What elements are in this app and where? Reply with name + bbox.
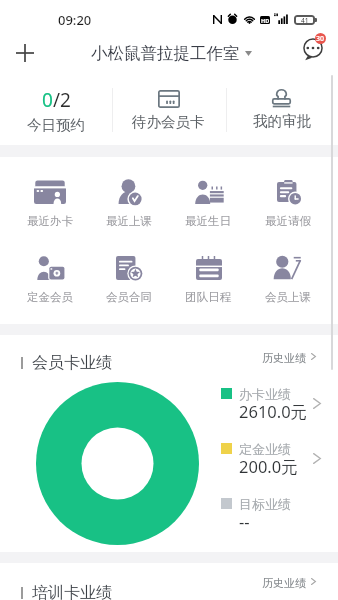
staticText: 小松鼠普拉提工作室 xyxy=(91,43,240,64)
staticText: 最近上课 xyxy=(106,214,152,228)
button[interactable]: 最近请假 xyxy=(248,157,328,233)
staticText: 培训卡业绩 xyxy=(32,583,112,600)
staticText: HD xyxy=(261,17,270,24)
button[interactable]: 我的审批 xyxy=(225,74,338,145)
staticText: 团队日程 xyxy=(185,290,231,304)
button[interactable]: Add xyxy=(9,37,40,68)
button[interactable]: 会员上课 xyxy=(248,233,328,324)
staticText: 会员合同 xyxy=(106,290,152,304)
staticText: 会员卡业绩 xyxy=(32,353,112,373)
button[interactable]: 历史业绩 xyxy=(262,341,330,375)
staticText: 最近办卡 xyxy=(27,214,73,228)
staticText: 最近生日 xyxy=(185,214,231,228)
staticText: 2610.0元 xyxy=(239,400,308,423)
button[interactable]: 历史业绩 xyxy=(262,571,330,595)
staticText: 09:20 xyxy=(58,11,92,29)
button[interactable]: 最近上课 xyxy=(89,157,168,233)
staticText: 历史业绩 xyxy=(262,576,306,590)
staticText: 最近请假 xyxy=(265,214,311,228)
button[interactable]: 定金会员 xyxy=(10,233,89,324)
button[interactable]: Messages xyxy=(297,32,331,66)
staticText: 0 xyxy=(42,87,53,113)
staticText: -- xyxy=(239,510,250,532)
staticText: 今日预约 xyxy=(27,116,85,134)
button[interactable]: 团队日程 xyxy=(168,233,248,324)
button[interactable]: 定金业绩 xyxy=(221,442,331,497)
staticText: 30 xyxy=(316,34,325,44)
button[interactable]: 待办会员卡 xyxy=(112,74,225,145)
button[interactable]: 最近办卡 xyxy=(10,157,89,233)
staticText: 待办会员卡 xyxy=(132,113,205,131)
button[interactable]: 会员合同 xyxy=(89,233,168,324)
staticText: 历史业绩 xyxy=(262,351,306,365)
staticText: 办卡业绩 xyxy=(239,386,291,402)
staticText: 41 xyxy=(301,16,309,25)
staticText: 我的审批 xyxy=(253,112,311,130)
staticText: /2 xyxy=(53,87,71,113)
staticText: 定金业绩 xyxy=(239,441,291,457)
button[interactable]: 0 xyxy=(0,74,112,145)
staticText: 会员上课 xyxy=(265,290,311,304)
staticText: 目标业绩 xyxy=(239,496,291,512)
button[interactable]: 办卡业绩 xyxy=(221,387,331,442)
staticText: 200.0元 xyxy=(239,455,298,478)
button[interactable]: 最近生日 xyxy=(168,157,248,233)
button[interactable]: 目标业绩 xyxy=(221,497,331,552)
button[interactable]: 小松鼠普拉提工作室 xyxy=(91,37,252,69)
staticText: 定金会员 xyxy=(27,290,73,304)
